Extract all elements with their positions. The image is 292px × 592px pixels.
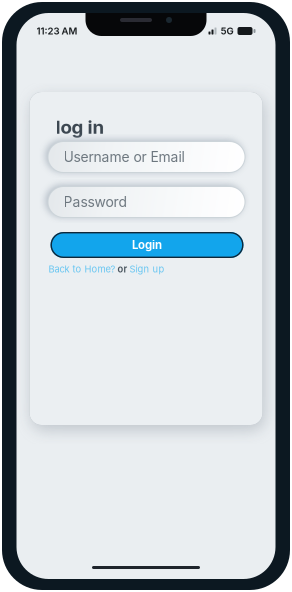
staticText: Back to Home? <box>48 263 115 275</box>
staticText: Password <box>63 194 126 210</box>
staticText: Username or Email <box>63 149 184 165</box>
staticText: Login <box>132 238 162 252</box>
staticText: 11:23 AM <box>36 25 77 37</box>
staticText: Sign up <box>129 263 164 275</box>
button[interactable]: Back to Home? <box>48 263 115 275</box>
button[interactable]: Login <box>50 232 243 258</box>
staticText: 5G <box>220 25 233 37</box>
staticText: or <box>115 263 129 275</box>
button[interactable]: Sign up <box>129 263 164 275</box>
staticText: log in <box>55 116 104 138</box>
